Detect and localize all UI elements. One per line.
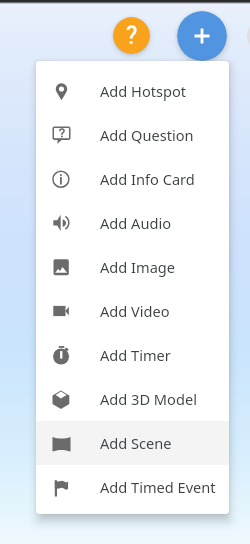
button[interactable]: Add Timer	[36, 333, 229, 377]
staticText: Add Scene	[100, 433, 172, 453]
staticText: Add 3D Model	[100, 389, 197, 409]
button[interactable]: Add	[177, 11, 227, 61]
staticText: Add Timer	[100, 345, 171, 365]
staticText: Add Video	[100, 301, 170, 321]
staticText: Add Image	[100, 257, 176, 277]
staticText: Add Audio	[100, 213, 171, 233]
button[interactable]: Add Audio	[36, 201, 229, 245]
staticText: Add Info Card	[100, 169, 195, 189]
button[interactable]: Add Question	[36, 113, 229, 157]
button[interactable]: Add Image	[36, 245, 229, 289]
button[interactable]: Add Info Card	[36, 157, 229, 201]
button[interactable]: Add Timed Event	[36, 465, 229, 509]
staticText: Add Question	[100, 125, 194, 145]
button[interactable]: Add 3D Model	[36, 377, 229, 421]
button[interactable]: Add Hotspot	[36, 69, 229, 113]
staticText: Add Timed Event	[100, 477, 216, 497]
button[interactable]: Help	[113, 17, 150, 54]
button[interactable]: Add Scene	[36, 421, 229, 465]
button[interactable]: Add Video	[36, 289, 229, 333]
staticText: Add Hotspot	[100, 81, 187, 101]
